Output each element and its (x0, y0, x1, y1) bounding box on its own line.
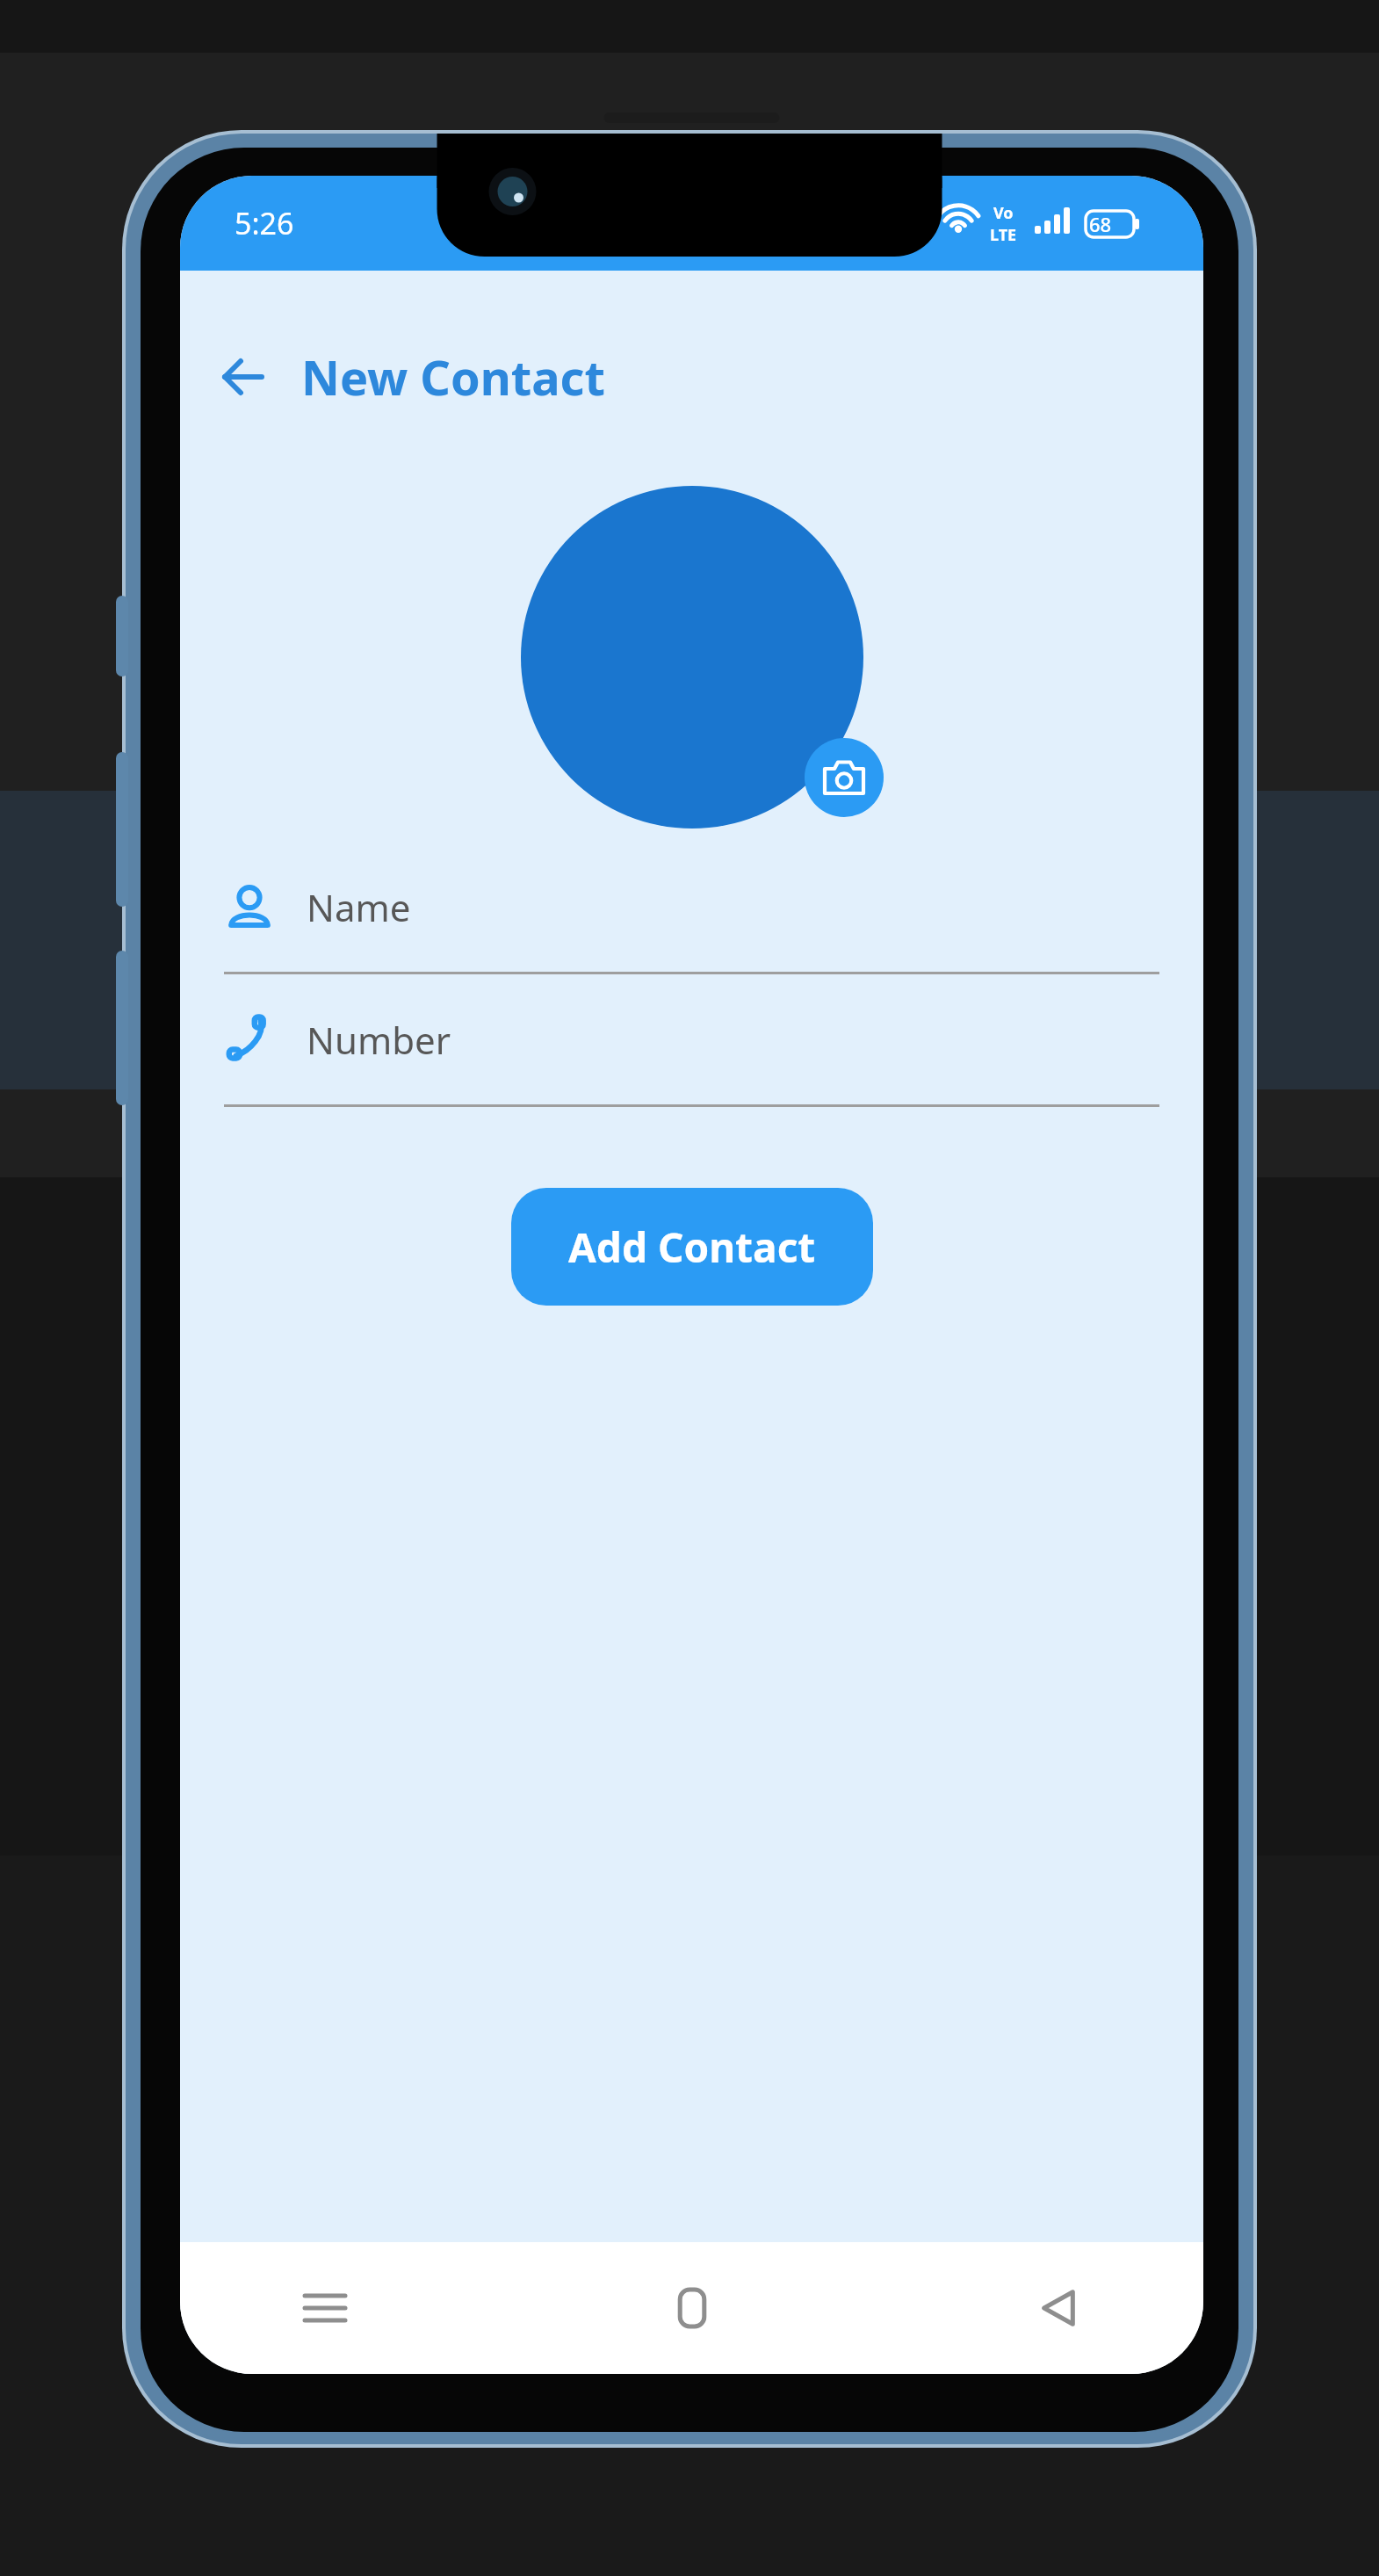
staticText: 5:26 (235, 203, 294, 243)
staticText: LTE (990, 224, 1017, 246)
button[interactable]: Change photo (805, 738, 884, 817)
staticText: 68 (1089, 211, 1112, 237)
staticText: Name (307, 882, 411, 932)
button[interactable]: Home (644, 2260, 740, 2356)
staticText: Vo (993, 202, 1014, 224)
button[interactable]: Contact photo (521, 486, 863, 829)
button[interactable]: Recent apps (277, 2260, 373, 2356)
button[interactable]: Back (1010, 2260, 1107, 2356)
button[interactable]: Name (180, 842, 1203, 974)
button[interactable]: Add Contact (511, 1188, 873, 1306)
staticText: Add Contact (568, 1219, 816, 1275)
button[interactable]: Number (180, 974, 1203, 1107)
staticText: Number (307, 1015, 451, 1065)
button[interactable]: Back (205, 339, 280, 415)
staticText: New Contact (301, 344, 605, 409)
